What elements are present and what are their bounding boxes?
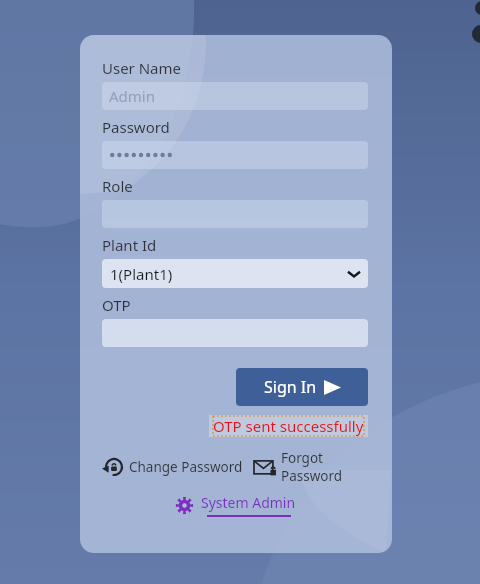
staticText: Sign In — [264, 376, 317, 398]
button[interactable]: Admin — [102, 82, 368, 110]
button[interactable] — [102, 141, 368, 169]
button[interactable]: System Admin — [173, 493, 298, 517]
button[interactable]: Forgot Password — [252, 447, 368, 487]
staticText: 1(Plant1) — [110, 264, 173, 284]
other: System Admin — [175, 496, 194, 515]
button[interactable]: 1(Plant1) — [102, 259, 368, 288]
other: Forgot Password — [254, 458, 276, 476]
staticText: Change Password — [129, 458, 243, 476]
staticText: OTP — [102, 295, 131, 315]
staticText: Admin — [109, 86, 155, 106]
other: Change Password — [104, 457, 124, 477]
staticText: OTP sent successfully — [213, 416, 364, 436]
staticText: Role — [102, 176, 133, 196]
staticText: Forgot Password — [281, 449, 366, 485]
other: Open plant list — [348, 270, 360, 278]
staticText: User Name — [102, 58, 182, 78]
staticText: System Admin — [201, 493, 296, 512]
staticText: Plant Id — [102, 235, 157, 255]
button[interactable]: Change Password — [102, 455, 245, 479]
button[interactable]: Sign In — [236, 368, 368, 406]
staticText: Password — [102, 117, 170, 137]
